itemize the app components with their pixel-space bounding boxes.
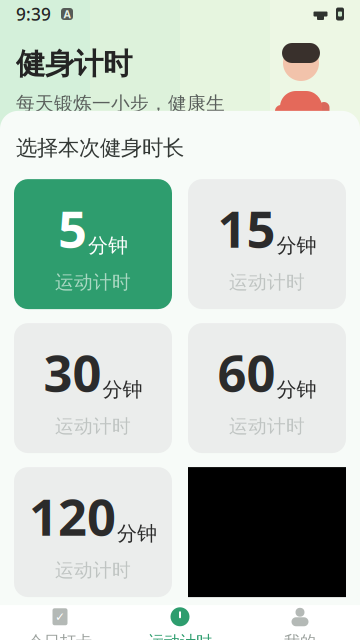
staticText: 分钟 xyxy=(276,233,316,258)
staticText: 我的 xyxy=(284,632,316,640)
staticText: 运动计时 xyxy=(55,415,131,438)
staticText: 健身计时 xyxy=(16,46,132,82)
staticText: 运动计时 xyxy=(229,415,305,438)
staticText: 每天锻炼一小步，健康生活一大步！ xyxy=(16,92,225,138)
staticText: ✓ xyxy=(55,610,65,624)
staticText: 分钟 xyxy=(88,233,128,258)
staticText: 120 xyxy=(29,482,116,550)
button[interactable]: 5 xyxy=(14,179,172,309)
staticText: 选择本次健身时长 xyxy=(16,135,184,161)
button[interactable]: ✓ xyxy=(0,601,120,640)
staticText: 分钟 xyxy=(276,377,316,402)
staticText: A xyxy=(63,7,70,21)
staticText: 分钟 xyxy=(117,521,157,546)
button[interactable]: 30 xyxy=(14,323,172,453)
button[interactable]: 60 xyxy=(188,323,346,453)
staticText: 5 xyxy=(58,194,87,262)
button[interactable]: 我的 xyxy=(240,601,360,640)
button[interactable]: 15 xyxy=(188,179,346,309)
staticText: 运动计时 xyxy=(229,271,305,294)
button[interactable]: 运动计时 xyxy=(120,601,240,640)
staticText: 15 xyxy=(217,194,275,262)
staticText: 60 xyxy=(217,338,275,406)
staticText: 运动计时 xyxy=(55,271,131,294)
staticText: 运动计时 xyxy=(55,559,131,582)
staticText: 运动计时 xyxy=(148,632,212,640)
staticText: 9:39 xyxy=(16,2,51,25)
staticText: 今日打卡 xyxy=(28,632,92,640)
staticText: 30 xyxy=(43,338,101,406)
staticText: 分钟 xyxy=(102,377,142,402)
button[interactable]: 120 xyxy=(14,467,172,597)
